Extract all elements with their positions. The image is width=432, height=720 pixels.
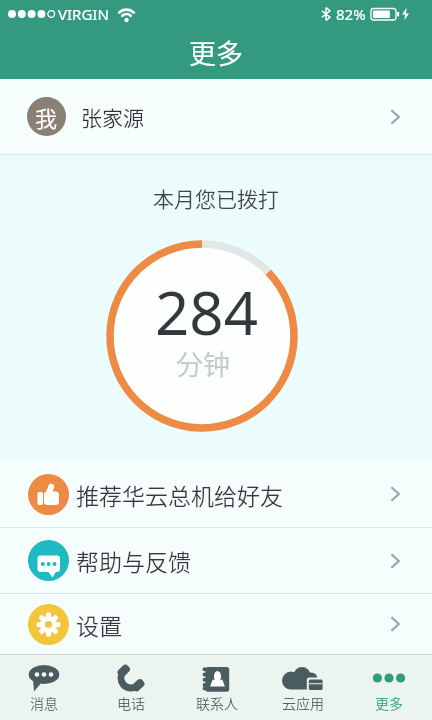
staticText: 消息 <box>30 693 58 713</box>
button[interactable]: 消息 <box>0 655 87 720</box>
staticText: 电话 <box>117 693 145 713</box>
staticText: 82% <box>336 4 366 24</box>
staticText: 我 <box>35 101 58 133</box>
button[interactable]: 设置 <box>0 594 432 654</box>
button[interactable]: 联系人 <box>174 655 260 720</box>
button[interactable]: 推荐华云总机给好友 <box>0 461 432 527</box>
staticText: 本月您已拨打 <box>153 183 279 213</box>
staticText: 帮助与反馈 <box>76 544 191 577</box>
staticText: VIRGIN <box>58 4 109 24</box>
staticText: 更多 <box>375 693 403 713</box>
staticText: 张家源 <box>81 102 144 132</box>
staticText: 分钟 <box>176 344 230 383</box>
staticText: 云应用 <box>282 693 324 713</box>
button[interactable]: 我 <box>0 79 432 154</box>
button[interactable]: 帮助与反馈 <box>0 528 432 593</box>
staticText: 推荐华云总机给好友 <box>76 478 283 511</box>
button[interactable]: 更多 <box>346 655 432 720</box>
staticText: 设置 <box>76 608 122 641</box>
staticText: 284 <box>155 271 258 353</box>
button[interactable]: 电话 <box>87 655 174 720</box>
button[interactable]: 云应用 <box>260 655 346 720</box>
staticText: 更多 <box>189 33 243 72</box>
staticText: 联系人 <box>196 693 238 713</box>
